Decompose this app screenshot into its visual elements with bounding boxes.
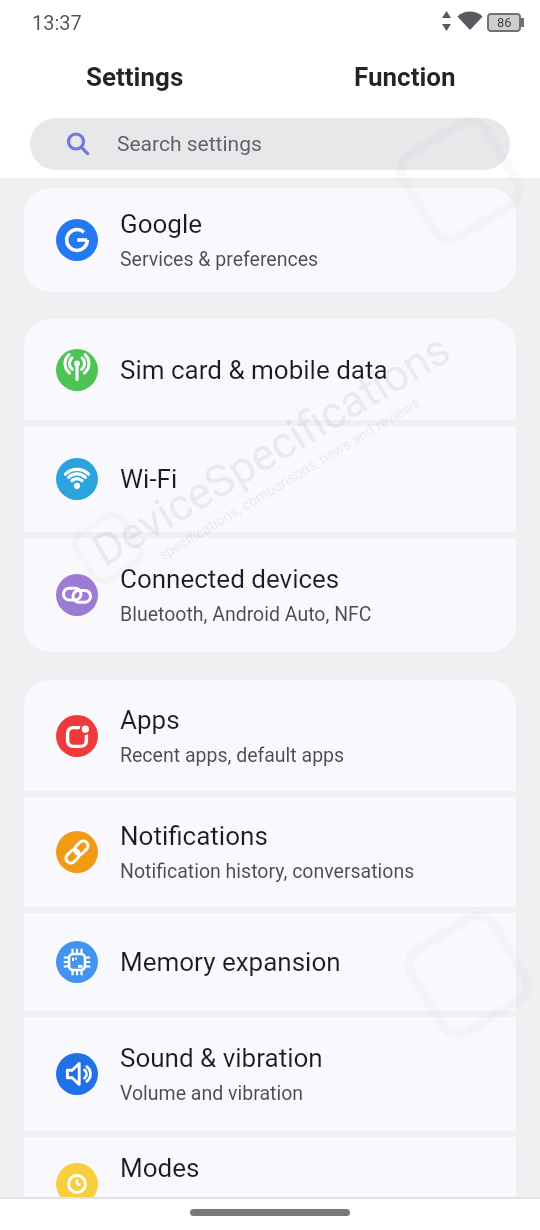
button[interactable]: Function: [270, 60, 540, 94]
button[interactable]: Wi-Fi: [24, 426, 516, 532]
staticText: Volume and vibration: [120, 1082, 304, 1105]
staticText: Connected devices: [120, 564, 340, 594]
button[interactable]: Connected devices: [24, 538, 516, 652]
staticText: Google: [120, 209, 203, 239]
staticText: Notification history, conversations: [120, 860, 415, 883]
staticText: Modes: [120, 1153, 200, 1183]
staticText: Settings: [86, 62, 184, 92]
button[interactable]: Settings: [0, 60, 270, 94]
staticText: Services & preferences: [120, 248, 319, 271]
staticText: Memory expansion: [120, 947, 341, 977]
staticText: Search settings: [117, 132, 262, 157]
button[interactable]: Memory expansion: [24, 913, 516, 1011]
staticText: Sound & vibration: [120, 1043, 323, 1073]
button[interactable]: Search settings: [30, 118, 510, 170]
button[interactable]: Sim card & mobile data: [24, 319, 516, 420]
staticText: Wi-Fi: [120, 464, 178, 494]
button[interactable]: Notifications: [24, 797, 516, 907]
staticText: Bluetooth, Android Auto, NFC: [120, 603, 372, 626]
staticText: DeviceSpecifications: [83, 323, 459, 577]
button[interactable]: Google: [24, 188, 516, 292]
button[interactable]: Modes: [24, 1137, 516, 1230]
staticText: specifications, comparisons, news and re…: [156, 394, 423, 564]
staticText: Notifications: [120, 821, 268, 851]
staticText: Recent apps, default apps: [120, 744, 345, 767]
staticText: 13:37: [32, 11, 82, 34]
button[interactable]: Apps: [24, 680, 516, 791]
staticText: Function: [354, 62, 456, 92]
staticText: Apps: [120, 705, 180, 735]
staticText: Sim card & mobile data: [120, 355, 388, 385]
staticText: 86: [497, 15, 512, 30]
staticText: [120, 1192, 125, 1215]
button[interactable]: Sound & vibration: [24, 1017, 516, 1131]
